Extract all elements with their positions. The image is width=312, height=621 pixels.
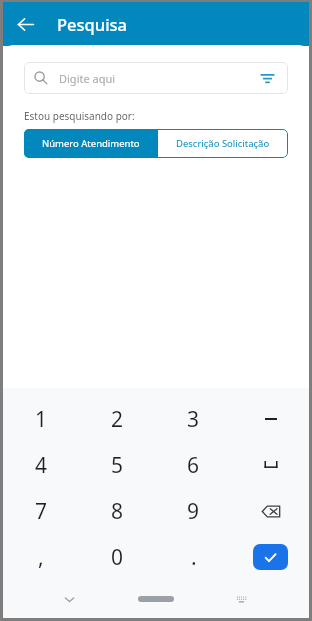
- button[interactable]: 0: [79, 534, 155, 580]
- staticText: .: [191, 543, 197, 572]
- staticText: 1: [35, 405, 48, 434]
- staticText: ,: [38, 543, 44, 572]
- button[interactable]: Filtros: [256, 67, 278, 89]
- button[interactable]: Voltar: [10, 9, 40, 39]
- button[interactable]: Início: [138, 596, 174, 602]
- button[interactable]: Número Atendimento: [24, 129, 158, 158]
- staticText: 7: [35, 497, 48, 526]
- staticText: Descrição Solicitação: [176, 137, 270, 150]
- staticText: 9: [187, 497, 200, 526]
- staticText: 0: [111, 543, 124, 572]
- staticText: 3: [187, 405, 200, 434]
- button[interactable]: ,: [3, 534, 79, 580]
- button[interactable]: Alterar teclado: [228, 586, 254, 612]
- button[interactable]: .: [155, 534, 232, 580]
- button[interactable]: Digite aqui: [24, 62, 288, 94]
- staticText: Pesquisa: [57, 13, 128, 35]
- button[interactable]: 2: [79, 396, 155, 442]
- button[interactable]: 7: [3, 488, 79, 534]
- staticText: Número Atendimento: [42, 137, 140, 150]
- button[interactable]: Espaço: [248, 442, 294, 488]
- button[interactable]: Apagar: [248, 488, 294, 534]
- button[interactable]: Ocultar teclado: [56, 586, 82, 612]
- button[interactable]: 8: [79, 488, 155, 534]
- staticText: 6: [187, 451, 200, 480]
- button[interactable]: 4: [3, 442, 79, 488]
- button[interactable]: 1: [3, 396, 79, 442]
- staticText: 2: [111, 405, 124, 434]
- staticText: Digite aqui: [59, 71, 116, 86]
- button[interactable]: Descrição Solicitação: [158, 129, 288, 158]
- button[interactable]: Sinal de menos: [248, 396, 294, 442]
- staticText: 5: [111, 451, 124, 480]
- button[interactable]: Confirmar: [253, 544, 288, 570]
- button[interactable]: 3: [155, 396, 232, 442]
- staticText: 8: [111, 497, 124, 526]
- staticText: Estou pesquisando por:: [24, 109, 135, 123]
- staticText: 4: [35, 451, 48, 480]
- button[interactable]: 6: [155, 442, 232, 488]
- button[interactable]: 9: [155, 488, 232, 534]
- button[interactable]: 5: [79, 442, 155, 488]
